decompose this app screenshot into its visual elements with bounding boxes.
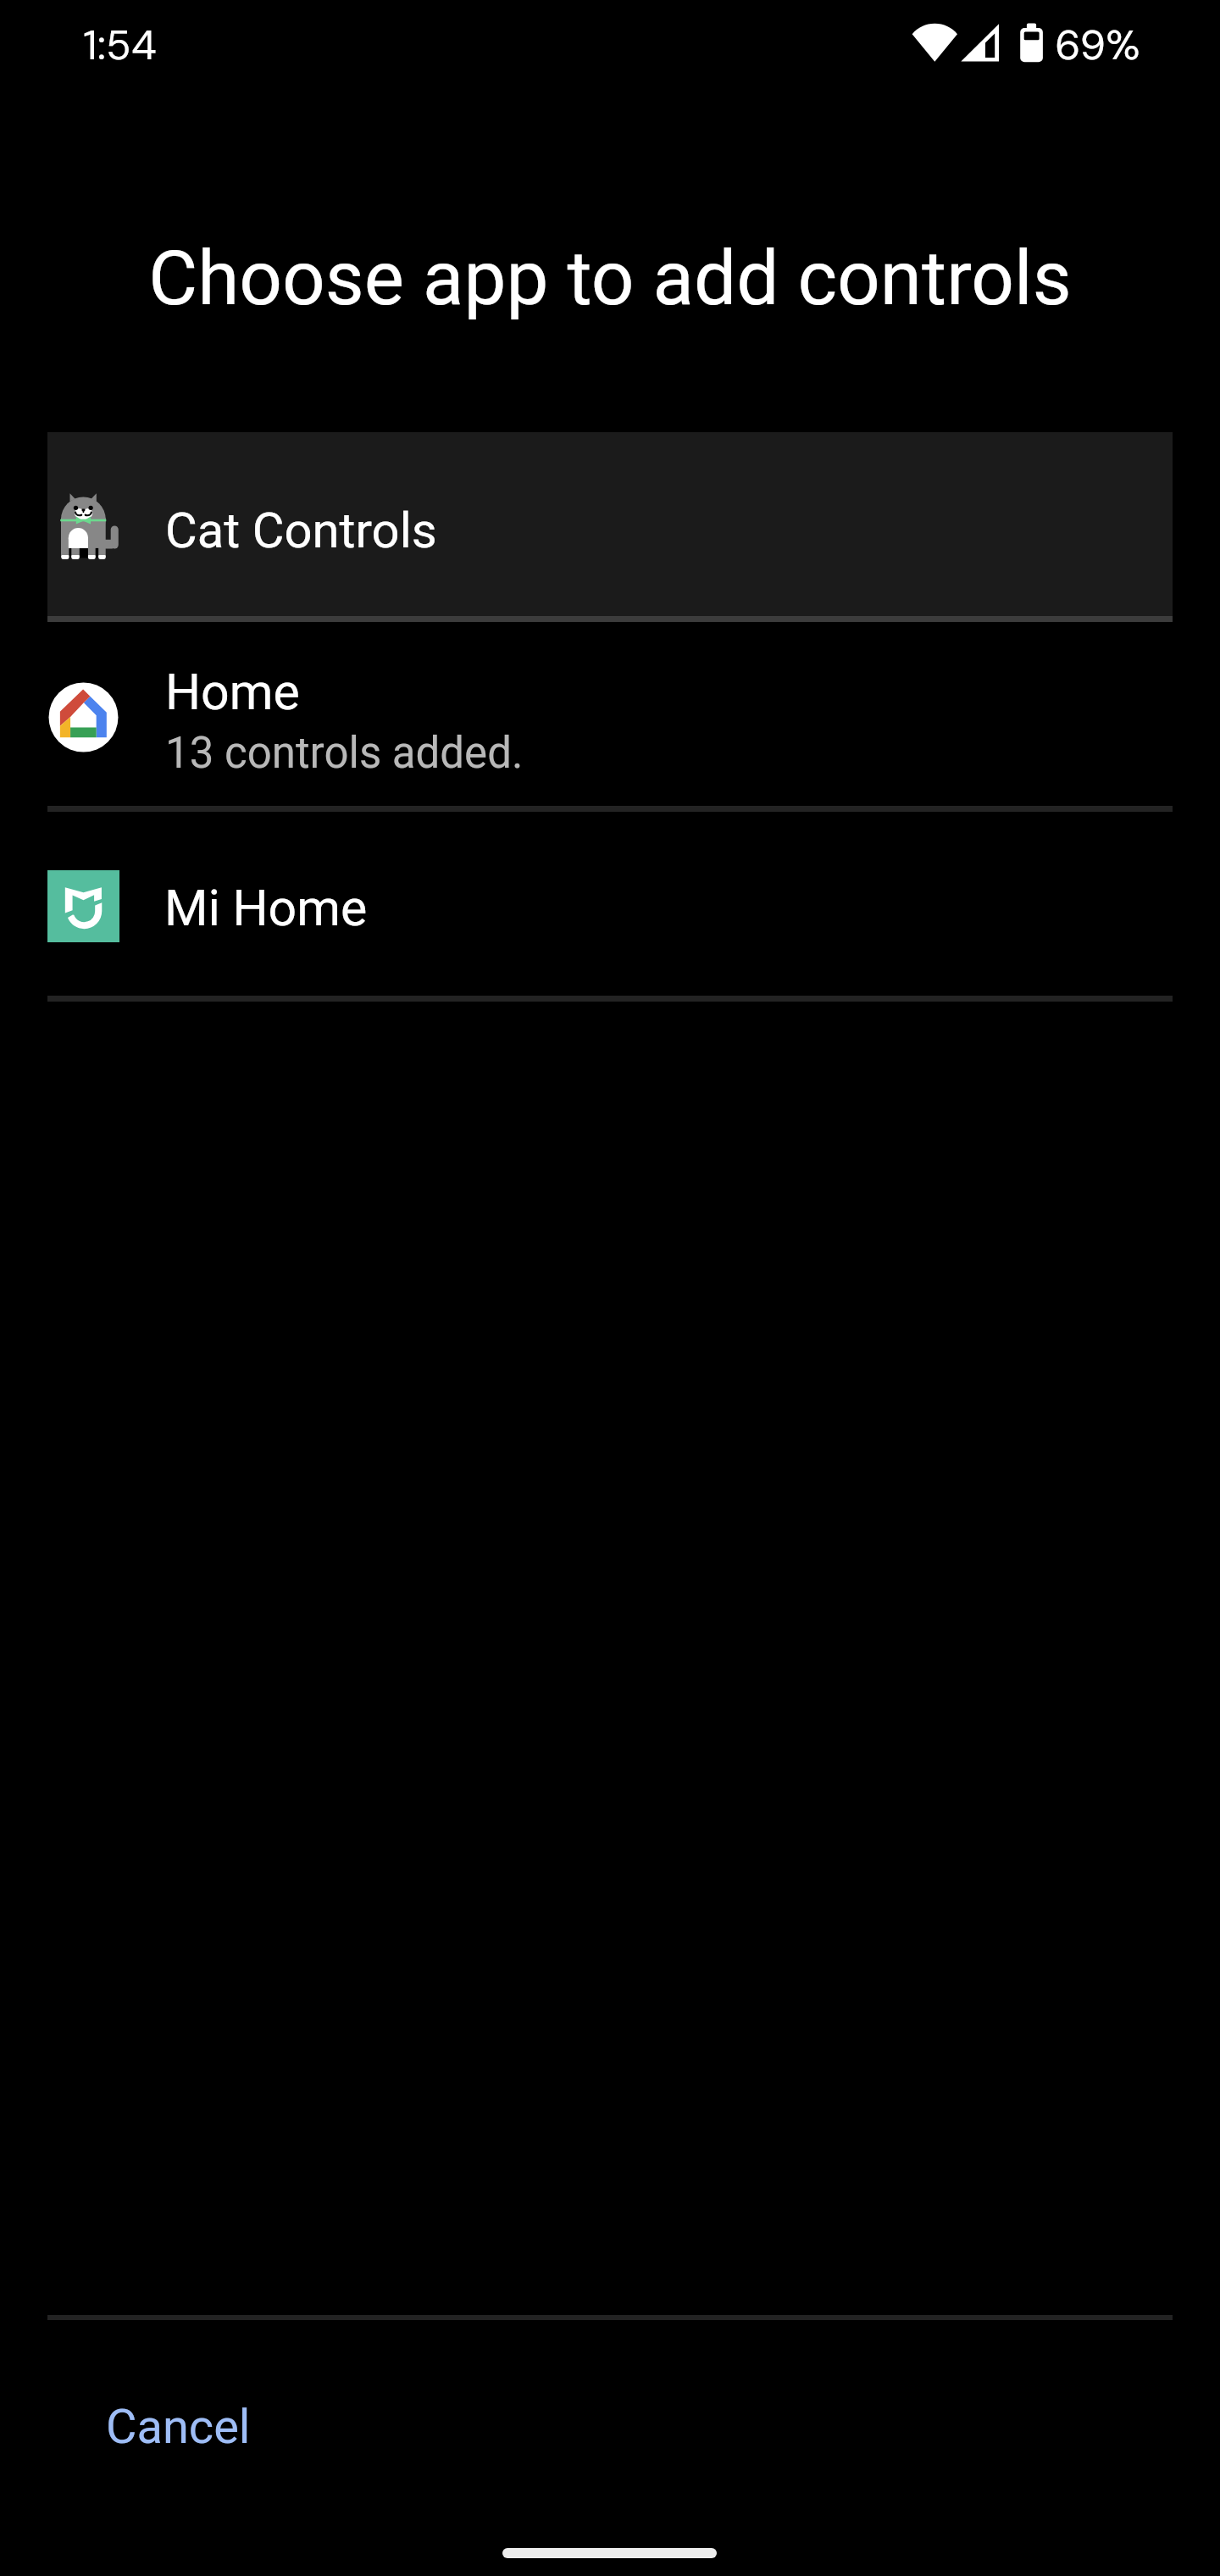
staticText: Home (165, 663, 300, 721)
staticText: 13 controls added. (165, 728, 524, 779)
staticText: 69% (1055, 18, 1140, 72)
staticText: 1:54 (83, 18, 157, 72)
staticText: Cat Controls (165, 502, 437, 559)
button[interactable]: Home, 13 controls added. (47, 622, 1173, 806)
staticText: Choose app to add controls (148, 234, 1072, 322)
button[interactable]: Mi Home (47, 812, 1173, 996)
staticText: Cancel (106, 2399, 251, 2455)
button[interactable]: Cat Controls (47, 432, 1173, 616)
staticText: Mi Home (164, 879, 368, 937)
button[interactable]: Cancel (47, 2342, 386, 2512)
